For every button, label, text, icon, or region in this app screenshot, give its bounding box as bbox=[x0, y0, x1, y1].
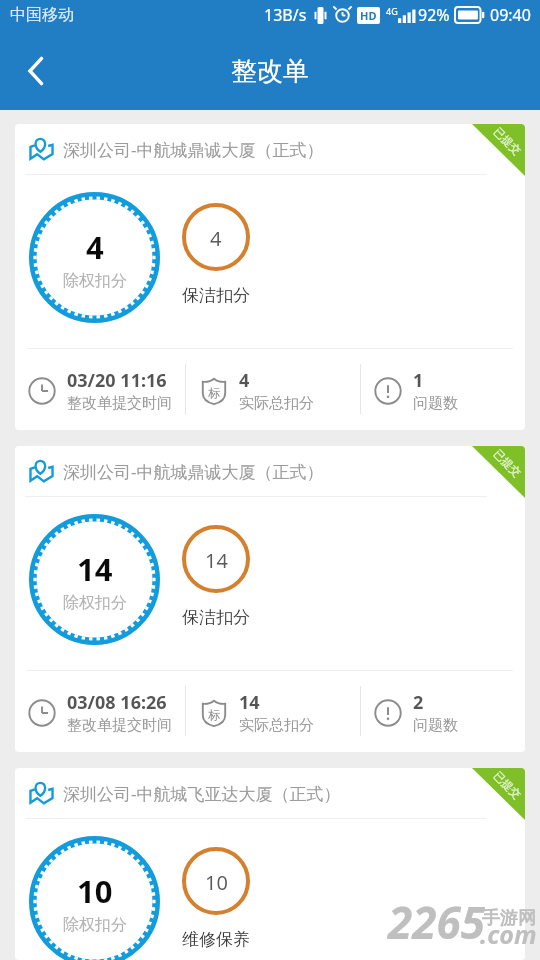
staticText: 03/08 16:26 bbox=[67, 690, 167, 715]
staticText: 2265 bbox=[388, 892, 485, 952]
staticText: 保洁扣分 bbox=[182, 607, 250, 628]
staticText: 手游网 bbox=[482, 907, 536, 930]
staticText: 03/20 11:16 bbox=[67, 368, 167, 393]
staticText: 除权扣分 bbox=[63, 271, 127, 291]
staticText: 10 bbox=[77, 870, 113, 912]
staticText: 4G bbox=[386, 5, 398, 17]
staticText: 4 bbox=[86, 226, 104, 268]
staticText: 整改单提交时间 bbox=[67, 394, 172, 413]
staticText: 整改单 bbox=[231, 55, 309, 88]
staticText: 中国移动 bbox=[10, 5, 74, 25]
staticText: 标 bbox=[208, 385, 220, 400]
button[interactable]: Back bbox=[5, 36, 67, 106]
staticText: HD bbox=[360, 8, 377, 23]
staticText: 已提交 bbox=[491, 768, 524, 802]
staticText: 标 bbox=[208, 707, 220, 722]
staticText: 除权扣分 bbox=[63, 593, 127, 613]
staticText: 1 bbox=[413, 368, 424, 393]
button[interactable]: 深圳公司-中航城飞亚达大厦（正式） bbox=[15, 768, 525, 960]
staticText: 4 bbox=[239, 368, 250, 393]
staticText: 4 bbox=[210, 225, 222, 252]
staticText: 维修保养 bbox=[182, 929, 250, 950]
staticText: 92% bbox=[418, 4, 450, 26]
staticText: 14 bbox=[239, 690, 260, 715]
button[interactable]: 深圳公司-中航城鼎诚大厦（正式） bbox=[15, 124, 525, 430]
staticText: 问题数 bbox=[413, 716, 458, 735]
staticText: 深圳公司-中航城鼎诚大厦（正式） bbox=[63, 138, 324, 161]
staticText: 已提交 bbox=[491, 446, 524, 480]
staticText: 13B/s bbox=[264, 4, 307, 26]
staticText: 除权扣分 bbox=[63, 915, 127, 935]
staticText: 实际总扣分 bbox=[239, 716, 314, 735]
staticText: 深圳公司-中航城鼎诚大厦（正式） bbox=[63, 460, 324, 483]
staticText: .com bbox=[480, 917, 537, 951]
staticText: 问题数 bbox=[413, 394, 458, 413]
staticText: 实际总扣分 bbox=[239, 394, 314, 413]
staticText: 已提交 bbox=[491, 124, 524, 158]
staticText: 整改单提交时间 bbox=[67, 716, 172, 735]
staticText: 09:40 bbox=[490, 4, 531, 26]
button[interactable]: 深圳公司-中航城鼎诚大厦（正式） bbox=[15, 446, 525, 752]
staticText: 14 bbox=[77, 548, 113, 590]
staticText: 10 bbox=[205, 869, 228, 896]
staticText: 14 bbox=[205, 547, 228, 574]
staticText: 保洁扣分 bbox=[182, 285, 250, 306]
staticText: 2 bbox=[413, 690, 424, 715]
staticText: 深圳公司-中航城飞亚达大厦（正式） bbox=[63, 782, 341, 805]
